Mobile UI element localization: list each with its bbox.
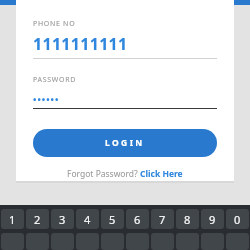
staticText: Forgot Password? xyxy=(67,168,140,180)
staticText: PHONE NO xyxy=(33,19,76,29)
button[interactable]: Key 1 xyxy=(1,209,24,229)
staticText: 0 xyxy=(234,212,241,227)
staticText: 3 xyxy=(59,212,66,227)
staticText: 2 xyxy=(34,212,41,227)
button[interactable]: Key 3 xyxy=(51,209,74,229)
staticText: 1 xyxy=(9,212,16,227)
button[interactable]: Key 0 xyxy=(226,209,249,229)
button[interactable]: Key 9 xyxy=(201,209,224,229)
button[interactable]: Key 2 xyxy=(26,209,49,229)
staticText: 5 xyxy=(109,212,116,227)
staticText: LOGIN xyxy=(105,137,145,149)
button[interactable]: LOGIN xyxy=(33,129,217,157)
button[interactable]: Key 8 xyxy=(176,209,199,229)
staticText: Click Here xyxy=(140,168,183,180)
staticText: 7 xyxy=(159,212,166,227)
staticText: 8 xyxy=(184,212,191,227)
button[interactable]: Key 5 xyxy=(101,209,124,229)
staticText: 4 xyxy=(84,212,91,227)
staticText: 1111111111 xyxy=(33,33,128,55)
button[interactable]: Click Here xyxy=(140,168,183,180)
staticText: 9 xyxy=(209,212,216,227)
button[interactable]: Key 7 xyxy=(151,209,174,229)
staticText: 6 xyxy=(134,212,141,227)
staticText: •••••• xyxy=(33,93,60,105)
staticText: PASSWORD xyxy=(33,75,77,85)
button[interactable]: Key 6 xyxy=(126,209,149,229)
button[interactable]: Key 4 xyxy=(76,209,99,229)
